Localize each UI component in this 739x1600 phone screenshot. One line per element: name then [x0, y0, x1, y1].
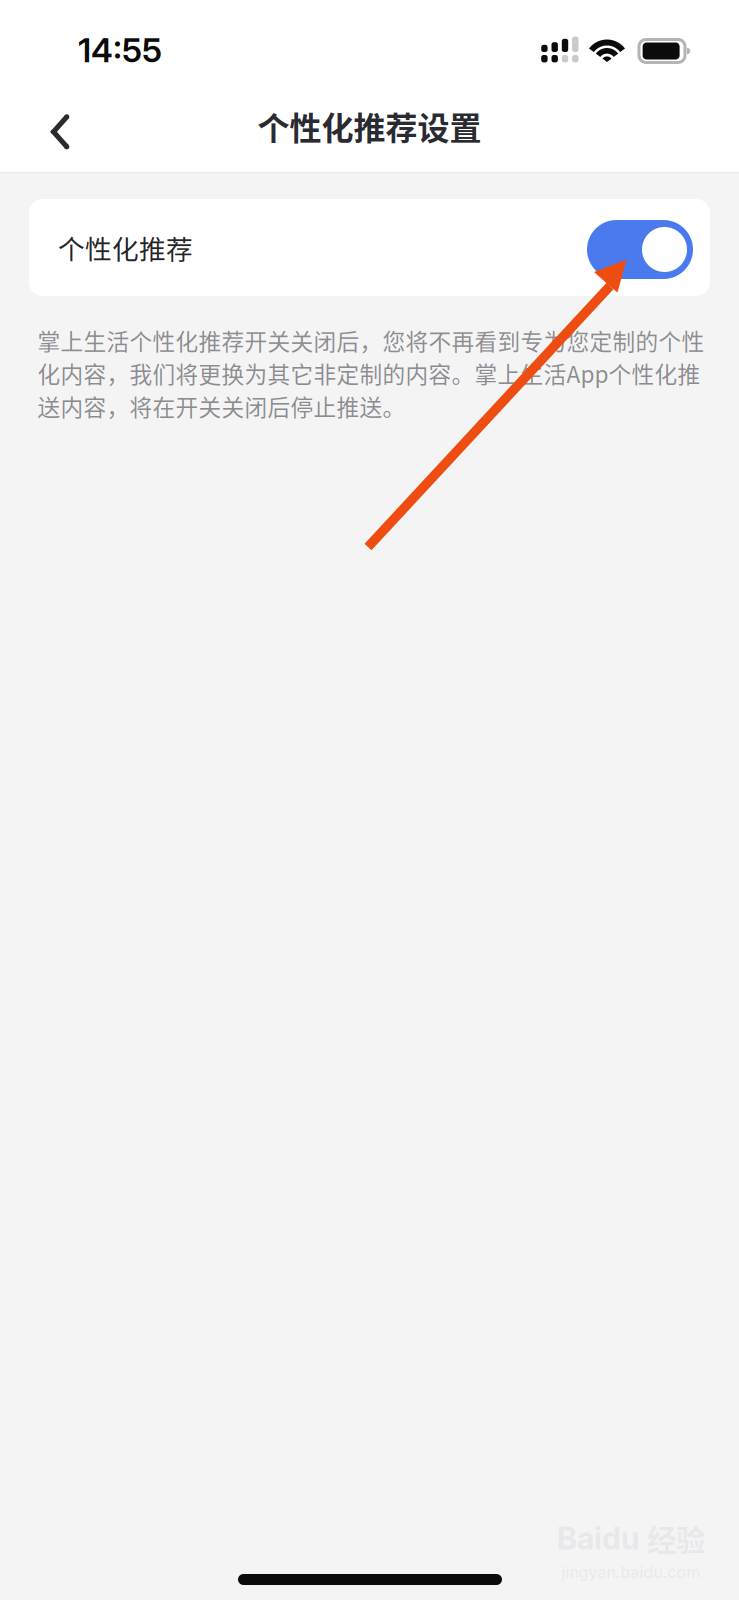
staticText: 掌上生活个性化推荐开关关闭后，您将不再看到专为您定制的个性化内容，我们将更换为其…	[37, 324, 704, 422]
button[interactable]: 返回	[23, 95, 97, 169]
button[interactable]: 个性化推荐开关	[587, 220, 693, 279]
staticText: Baidu	[557, 1520, 640, 1557]
staticText: 个性化推荐设置	[257, 103, 481, 149]
button[interactable]: 个性化推荐	[29, 199, 710, 296]
staticText: jingyan.baidu.com	[561, 1562, 700, 1582]
staticText: 经验	[647, 1517, 705, 1559]
staticText: 个性化推荐	[58, 228, 193, 267]
staticText: 14:55	[78, 30, 162, 70]
